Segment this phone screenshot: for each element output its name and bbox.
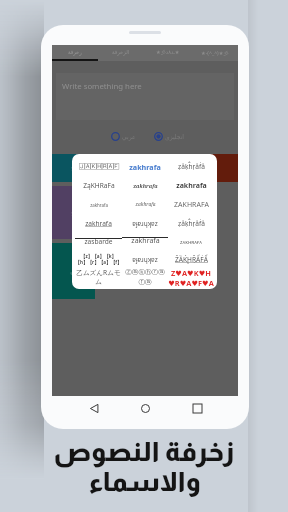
button[interactable]: zakhrafa xyxy=(75,195,122,214)
button[interactable] xyxy=(194,243,238,299)
staticText: ⓩⓐⓚⓗⓡⓐⓕⓐ xyxy=(122,268,168,286)
staticText: ẐẦḰḨṜẨḞẨ xyxy=(175,255,208,264)
staticText: zakhrafa xyxy=(90,202,108,208)
staticText: 🄹🄰🄺🄷🅁🄰🄵 xyxy=(79,164,119,169)
staticText: zakhrafa xyxy=(135,201,156,208)
button[interactable]: Back xyxy=(84,398,104,418)
staticText: ح xyxy=(71,163,77,173)
button[interactable]: ɐɟɐɹɥʞɐz xyxy=(122,214,168,232)
staticText: ɐɟɐɹɥʞɐz xyxy=(132,255,158,264)
button[interactable] xyxy=(146,154,190,182)
staticText: ★彡ـﺩ٨ﺩ★ xyxy=(156,49,180,56)
staticText: والاسماء xyxy=(88,467,201,497)
staticText: زخرفة xyxy=(68,49,82,55)
button[interactable]: ح xyxy=(52,154,95,182)
staticText: zakhrafa xyxy=(176,181,207,191)
button[interactable]: ZąKHRaFa xyxy=(75,176,122,195)
button[interactable] xyxy=(146,243,190,299)
staticText: انجليزي xyxy=(165,133,185,140)
button[interactable]: ᴢᴀᴋʜʀᴀғᴀ xyxy=(168,232,214,250)
button[interactable] xyxy=(99,186,142,239)
staticText: Write something here xyxy=(62,81,142,92)
staticText: ɐɟɐɹɥʞɐz xyxy=(132,219,158,228)
staticText: ZAKHRAFA xyxy=(174,200,209,210)
staticText: ᴢᴀᴋʜʀᴀғᴀ xyxy=(180,238,202,245)
staticText: Z♥A♥K♥H♥R♥A♥F♥A xyxy=(168,268,214,286)
button[interactable]: ɐɟɐɹɥʞɐz xyxy=(122,250,168,268)
button[interactable] xyxy=(99,154,142,182)
staticText: zakhrafa xyxy=(131,236,160,246)
staticText: zasbarde xyxy=(84,237,113,246)
button[interactable]: Home xyxy=(135,398,155,418)
staticText: ẓåḳĥṛåḟå xyxy=(178,162,205,171)
staticText: ج xyxy=(71,208,77,218)
button[interactable]: ẓåḳĥṛåḟå xyxy=(168,214,214,232)
button[interactable]: Write something here xyxy=(56,73,234,120)
button[interactable]: zakhrafa xyxy=(75,214,122,232)
button[interactable] xyxy=(99,243,142,299)
staticText: 乙ムズんRムモム xyxy=(75,268,122,286)
staticText: عربي xyxy=(122,133,136,140)
staticText: zakhrafa xyxy=(85,219,112,228)
button[interactable]: zakhrafa xyxy=(168,176,214,195)
staticText: زخرفة النصوص xyxy=(53,437,235,467)
button[interactable]: ZAKHRAFA xyxy=(168,195,214,214)
button[interactable]: ل xyxy=(52,243,95,299)
button[interactable] xyxy=(194,186,238,239)
staticText: zakhrafa xyxy=(133,182,158,189)
button[interactable]: عربي xyxy=(110,132,137,141)
button[interactable]: زخرفة xyxy=(52,45,98,61)
staticText: الزخرفة xyxy=(112,49,130,55)
staticText: zakhrafa xyxy=(129,162,161,172)
button[interactable] xyxy=(194,154,238,182)
button[interactable]: zakhrafa xyxy=(122,232,168,250)
staticText: 【z】【a】【k】【h】【r】【a】【f】【a】 xyxy=(75,253,122,265)
staticText: ★-(^_^)★彡 xyxy=(201,49,229,56)
button[interactable]: zakhrafa xyxy=(122,176,168,195)
button[interactable]: 🄹🄰🄺🄷🅁🄰🄵 xyxy=(75,157,122,176)
button[interactable]: Recent apps xyxy=(187,398,207,418)
staticText: ل xyxy=(70,266,77,276)
button[interactable]: ẓåḳĥṛåḟå xyxy=(168,157,214,176)
button[interactable]: 乙ムズんRムモム xyxy=(75,268,122,286)
button[interactable]: ẐẦḰḨṜẨḞẨ xyxy=(168,250,214,268)
button[interactable]: Z♥A♥K♥H♥R♥A♥F♥A xyxy=(168,268,214,286)
staticText: ZąKHRaFa xyxy=(83,181,115,190)
button[interactable]: ★-(^_^)★彡 xyxy=(191,45,238,61)
button[interactable]: zakhrafa xyxy=(122,157,168,176)
button[interactable]: ج xyxy=(52,186,95,239)
button[interactable]: zakhrafa xyxy=(122,195,168,214)
button[interactable] xyxy=(146,186,190,239)
button[interactable]: الزخرفة xyxy=(98,45,144,61)
button[interactable]: zasbarde xyxy=(75,232,122,250)
button[interactable]: 【z】【a】【k】【h】【r】【a】【f】【a】 xyxy=(75,250,122,268)
button[interactable]: ★彡ـﺩ٨ﺩ★ xyxy=(144,45,191,61)
button[interactable]: ⓩⓐⓚⓗⓡⓐⓕⓐ xyxy=(122,268,168,286)
button[interactable]: انجليزي xyxy=(153,132,186,141)
staticText: ẓåḳĥṛåḟå xyxy=(178,219,205,228)
